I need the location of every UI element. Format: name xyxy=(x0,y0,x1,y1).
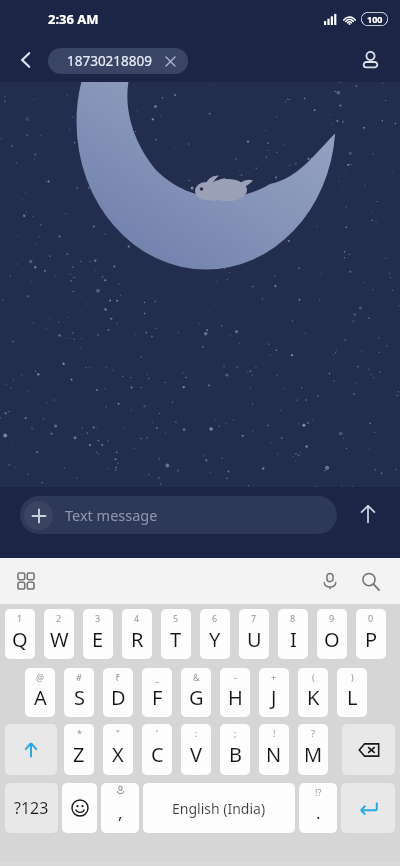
staticText: ! xyxy=(273,727,276,739)
button[interactable]: ' xyxy=(142,724,172,775)
staticText: E xyxy=(92,626,104,653)
staticText: J xyxy=(271,684,277,711)
button[interactable]: @ xyxy=(25,668,55,717)
button[interactable]: - xyxy=(220,668,250,717)
button[interactable]: 0 xyxy=(356,609,386,659)
button[interactable]: Apps xyxy=(8,563,44,599)
staticText: D xyxy=(111,684,126,711)
staticText: _ xyxy=(155,671,159,683)
button[interactable]: Enter xyxy=(341,783,395,833)
button[interactable]: 18730218809 xyxy=(48,48,188,74)
button[interactable]: ; xyxy=(220,724,250,775)
staticText: ?123 xyxy=(14,797,49,819)
staticText: - xyxy=(234,671,237,683)
button[interactable]: ! xyxy=(259,724,289,775)
staticText: 100 xyxy=(367,13,383,25)
button[interactable]: ?123 xyxy=(5,783,58,833)
button[interactable]: # xyxy=(64,668,94,717)
staticText: F xyxy=(152,684,163,711)
button[interactable]: Emoji xyxy=(62,783,97,833)
button[interactable]: 1 xyxy=(5,609,35,659)
staticText: 1 xyxy=(17,612,23,624)
staticText: Q xyxy=(12,626,28,653)
staticText: L xyxy=(347,684,358,711)
button[interactable]: Search xyxy=(350,561,390,601)
button[interactable]: ? xyxy=(298,724,328,775)
staticText: 4 xyxy=(134,612,140,624)
staticText: T xyxy=(170,626,182,653)
button[interactable]: Shift xyxy=(5,724,57,775)
staticText: & xyxy=(193,671,200,683)
staticText: English (India) xyxy=(172,799,266,818)
button[interactable]: !? xyxy=(299,783,337,833)
staticText: @ xyxy=(36,671,45,683)
staticText: ? xyxy=(311,727,315,739)
button[interactable]: _ xyxy=(142,668,172,717)
button[interactable]: Contact xyxy=(350,40,390,80)
staticText: ₹ xyxy=(115,671,121,683)
button[interactable]: * xyxy=(64,724,94,775)
staticText: H xyxy=(228,684,243,711)
button[interactable]: , xyxy=(101,783,139,833)
staticText: R xyxy=(131,626,144,653)
staticText: 3 xyxy=(95,612,101,624)
staticText: , xyxy=(118,801,123,824)
staticText: V xyxy=(190,741,202,768)
staticText: I xyxy=(290,626,297,653)
staticText: 2:36 AM xyxy=(48,10,99,28)
staticText: Z xyxy=(73,741,85,768)
button[interactable]: 4 xyxy=(122,609,152,659)
staticText: S xyxy=(74,684,85,711)
staticText: 18730218809 xyxy=(67,52,152,70)
staticText: G xyxy=(189,684,204,711)
staticText: ' xyxy=(156,727,159,739)
button[interactable]: 6 xyxy=(200,609,230,659)
staticText: ( xyxy=(312,671,315,683)
button[interactable]: 8 xyxy=(278,609,308,659)
button[interactable]: 3 xyxy=(83,609,113,659)
staticText: N xyxy=(266,741,282,768)
staticText: 6 xyxy=(212,612,218,624)
staticText: Y xyxy=(209,626,221,653)
staticText: X xyxy=(112,741,124,768)
button[interactable]: : xyxy=(181,724,211,775)
button[interactable]: ) xyxy=(337,668,367,717)
staticText: K xyxy=(307,684,320,711)
staticText: 9 xyxy=(329,612,335,624)
button[interactable]: 7 xyxy=(239,609,269,659)
button[interactable]: Text message xyxy=(20,496,337,534)
button[interactable]: Send xyxy=(346,492,390,536)
staticText: 0 xyxy=(368,612,374,624)
staticText: # xyxy=(76,671,82,683)
staticText: " xyxy=(116,727,120,739)
button[interactable]: English (India) xyxy=(143,783,295,833)
button[interactable]: & xyxy=(181,668,211,717)
staticText: ; xyxy=(234,727,237,739)
staticText: U xyxy=(247,626,262,653)
staticText: B xyxy=(229,741,242,768)
staticText: * xyxy=(77,727,82,739)
button[interactable]: + xyxy=(259,668,289,717)
staticText: !? xyxy=(315,786,322,798)
staticText: ) xyxy=(351,671,354,683)
staticText: 5 xyxy=(173,612,179,624)
button[interactable]: Back xyxy=(6,40,46,80)
staticText: O xyxy=(324,626,340,653)
button[interactable]: 9 xyxy=(317,609,347,659)
button[interactable]: ₹ xyxy=(103,668,133,717)
staticText: C xyxy=(151,741,164,768)
staticText: + xyxy=(271,671,277,683)
staticText: 7 xyxy=(251,612,257,624)
button[interactable]: ( xyxy=(298,668,328,717)
staticText: 2 xyxy=(56,612,62,624)
staticText: A xyxy=(34,684,47,711)
button[interactable]: Voice input xyxy=(310,561,350,601)
staticText: 8 xyxy=(290,612,296,624)
staticText: : xyxy=(195,727,198,739)
button[interactable]: " xyxy=(103,724,133,775)
button[interactable]: 5 xyxy=(161,609,191,659)
button[interactable]: 2 xyxy=(44,609,74,659)
button[interactable]: Backspace xyxy=(342,724,395,775)
staticText: W xyxy=(50,626,69,653)
staticText: M xyxy=(304,741,323,768)
